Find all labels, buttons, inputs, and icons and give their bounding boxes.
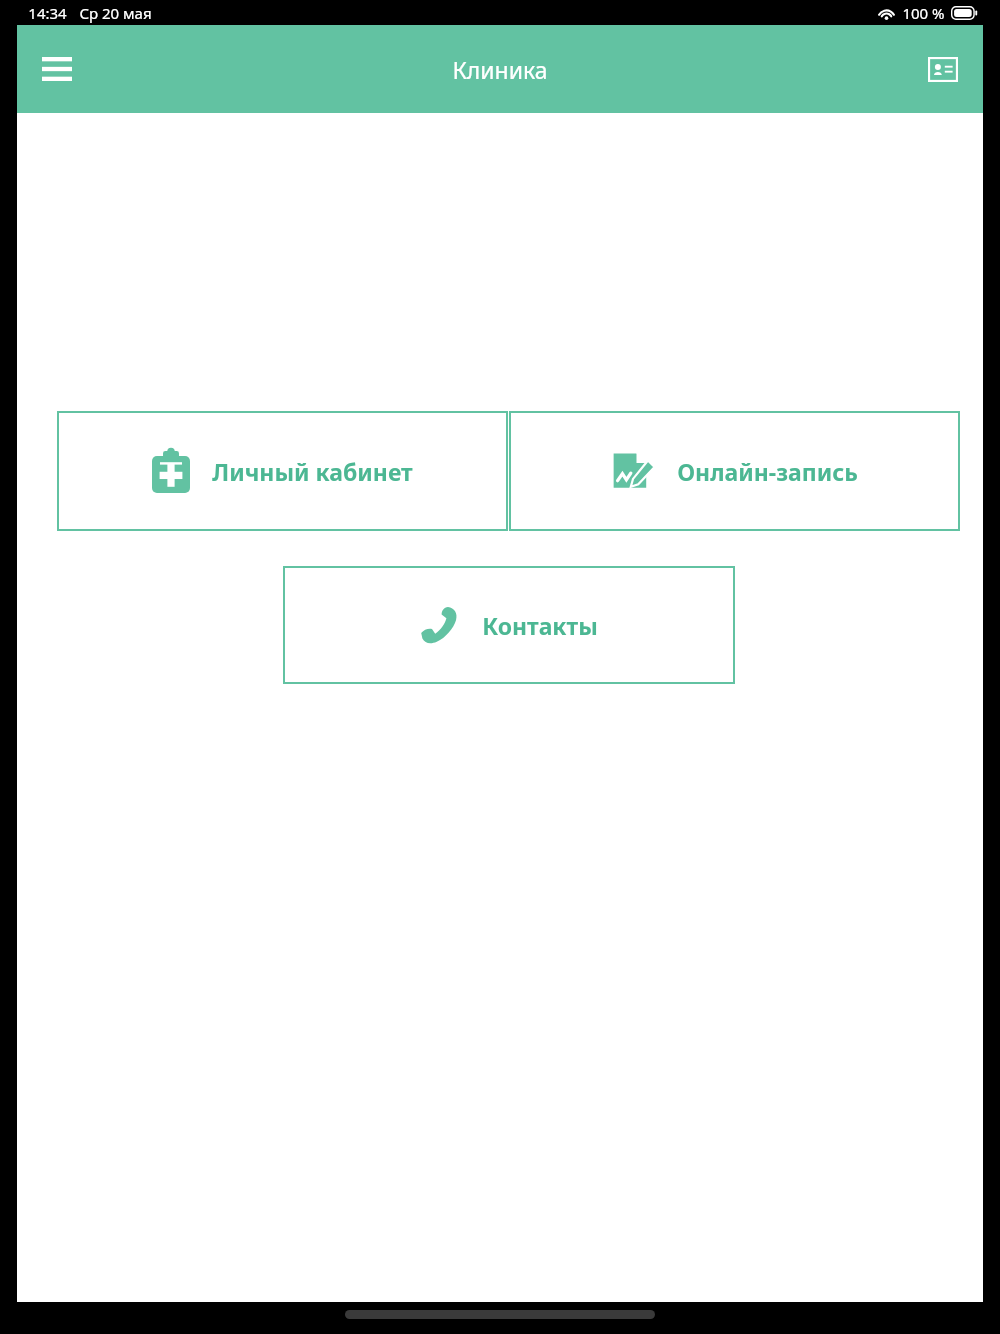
staticText: Контакты bbox=[482, 610, 598, 641]
staticText: Онлайн-запись bbox=[677, 456, 858, 487]
staticText: Клиника bbox=[452, 54, 548, 85]
button[interactable]: Онлайн-запись bbox=[509, 411, 960, 531]
staticText: 100 % bbox=[902, 3, 945, 23]
button[interactable]: Меню bbox=[31, 43, 83, 95]
button[interactable]: Карточка пациента bbox=[917, 43, 969, 95]
button[interactable]: Контакты bbox=[283, 566, 735, 684]
staticText: Ср 20 мая bbox=[79, 3, 152, 23]
button[interactable]: Личный кабинет bbox=[57, 411, 508, 531]
staticText: Личный кабинет bbox=[212, 456, 413, 487]
staticText: 14:34 bbox=[28, 3, 67, 23]
